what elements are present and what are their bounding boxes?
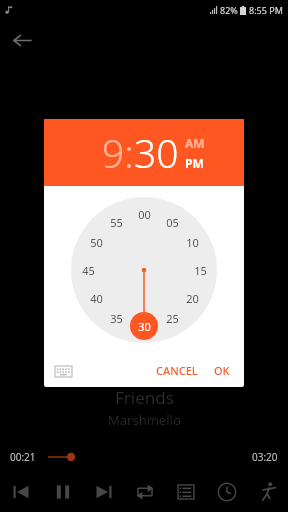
staticText: CANCEL — [156, 363, 198, 378]
button[interactable]: CANCEL — [148, 357, 206, 384]
staticText: 9: — [102, 126, 134, 179]
staticText: 00 — [138, 207, 151, 222]
staticText: 55 — [110, 215, 123, 230]
button[interactable]: Previous — [0, 474, 42, 510]
staticText: 40 — [90, 291, 103, 306]
button[interactable]: Walk — [247, 474, 288, 510]
button[interactable]: Sleep timer — [206, 474, 247, 510]
button[interactable]: Keyboard input — [52, 360, 74, 382]
staticText: PM — [185, 155, 204, 171]
staticText: 10 — [186, 235, 199, 250]
button[interactable]: Next — [83, 474, 124, 510]
staticText: Marshmello — [108, 411, 181, 429]
button[interactable]: OK — [206, 357, 244, 384]
staticText: 30 — [134, 126, 179, 179]
button[interactable]: PM — [185, 155, 204, 171]
staticText: 03:20 — [252, 450, 278, 464]
staticText: 35 — [110, 311, 123, 326]
staticText: 20 — [186, 291, 199, 306]
staticText: 8:55 PM — [249, 4, 283, 16]
button[interactable]: Play — [42, 474, 83, 510]
button[interactable]: Back — [6, 24, 38, 56]
button[interactable]: Playlist — [165, 474, 206, 510]
button[interactable]: Repeat — [124, 474, 165, 510]
staticText: 05 — [166, 215, 179, 230]
staticText: 50 — [90, 235, 103, 250]
staticText: 30 — [138, 319, 151, 334]
staticText: 15 — [194, 263, 207, 278]
button[interactable]: AM — [185, 135, 205, 151]
staticText: AM — [185, 135, 205, 151]
staticText: Friends — [115, 386, 174, 409]
staticText: 00:21 — [10, 450, 36, 464]
staticText: OK — [214, 363, 230, 378]
staticText: 25 — [166, 311, 179, 326]
staticText: 45 — [82, 263, 95, 278]
staticText: 82% — [220, 4, 238, 16]
